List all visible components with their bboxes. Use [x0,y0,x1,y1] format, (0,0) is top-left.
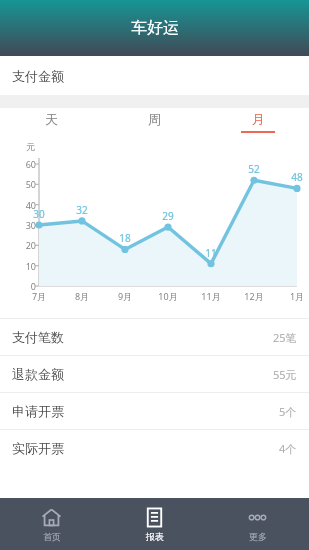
staticText: 更多 [249,531,267,542]
button[interactable]: 月 [206,108,309,138]
staticText: 退款金额 [12,366,64,382]
staticText: 支付金额 [12,68,64,84]
staticText: 元 [26,141,35,152]
staticText: 11 [199,246,223,260]
staticText: 29 [156,209,180,223]
button[interactable]: 退款金额 [0,356,309,392]
staticText: 5个 [279,404,297,419]
button[interactable]: 更多 [206,498,309,550]
staticText: 10 [14,260,36,272]
staticText: 40 [14,199,36,211]
button[interactable]: 首页 [0,498,103,550]
button[interactable]: 天 [0,108,103,138]
staticText: 天 [45,111,58,127]
button[interactable]: 报表 [103,498,206,550]
staticText: 报表 [146,531,164,542]
staticText: 实际开票 [12,440,64,456]
staticText: 32 [70,203,94,217]
staticText: 18 [113,231,137,245]
staticText: 9月 [111,290,139,302]
staticText: 周 [148,111,161,127]
staticText: 30 [14,219,36,231]
staticText: 30 [27,207,51,221]
staticText: 55元 [273,367,297,382]
staticText: 60 [14,158,36,170]
staticText: 1月 [283,290,309,302]
staticText: 首页 [43,531,61,542]
button[interactable]: 周 [103,108,206,138]
staticText: 20 [14,239,36,251]
staticText: 7月 [25,290,53,302]
staticText: 48 [285,170,309,184]
staticText: 25笔 [273,330,297,345]
staticText: 12月 [240,290,268,302]
staticText: 52 [242,162,266,176]
staticText: 月 [252,111,265,127]
button[interactable]: 支付笔数 [0,319,309,355]
staticText: 0 [14,280,36,292]
staticText: 车好运 [131,18,179,38]
staticText: 4个 [279,441,297,456]
staticText: 支付笔数 [12,329,64,345]
button[interactable]: 实际开票 [0,430,309,466]
staticText: 申请开票 [12,403,64,419]
staticText: 50 [14,178,36,190]
staticText: 10月 [154,290,182,302]
staticText: 11月 [197,290,225,302]
staticText: 8月 [68,290,96,302]
button[interactable]: 申请开票 [0,393,309,429]
